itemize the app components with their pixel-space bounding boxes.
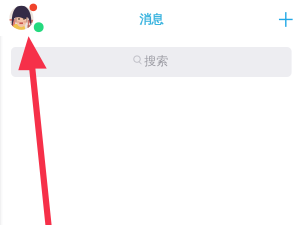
button[interactable]: New message xyxy=(269,4,300,34)
staticText: 消息 xyxy=(139,12,163,27)
staticText: 搜索 xyxy=(144,53,168,68)
button[interactable]: Profile xyxy=(0,0,46,36)
button[interactable]: 搜索 xyxy=(11,47,292,77)
